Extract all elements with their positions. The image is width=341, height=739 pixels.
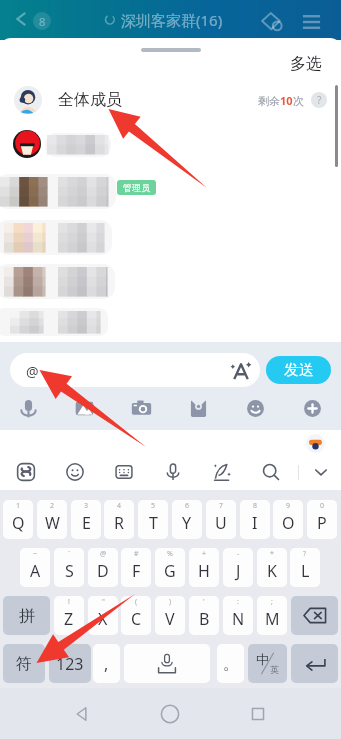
button[interactable]: Sogou — [1, 455, 50, 489]
button[interactable]: + — [189, 548, 219, 587]
staticText: 3 — [84, 501, 89, 511]
button[interactable]: AI text — [229, 358, 253, 382]
staticText: 。 — [223, 654, 239, 674]
staticText: @ — [26, 362, 39, 381]
button[interactable]: Handwrite — [197, 455, 246, 489]
staticText: , — [104, 653, 109, 675]
button[interactable]: More — [284, 391, 341, 425]
button[interactable]: 2 — [37, 500, 67, 539]
button[interactable]: Emoji — [50, 455, 99, 489]
button[interactable]: 5 — [138, 500, 168, 539]
staticText: 0 — [320, 501, 325, 511]
staticText: U — [215, 512, 227, 534]
button[interactable] — [0, 210, 341, 254]
staticText: 9 — [286, 501, 291, 511]
button[interactable]: 符 — [3, 644, 45, 683]
button[interactable]: 3 — [71, 500, 101, 539]
button[interactable]: 0 — [307, 500, 337, 539]
button[interactable]: Enter — [291, 644, 338, 683]
staticText: G — [164, 560, 176, 582]
button[interactable]: : — [223, 596, 253, 635]
button[interactable]: ` — [54, 548, 84, 587]
staticText: 123 — [56, 653, 84, 675]
staticText: ` — [68, 549, 70, 559]
staticText: ? — [303, 549, 307, 559]
staticText: 5 — [151, 501, 156, 511]
staticText: V — [165, 608, 175, 630]
staticText: W — [45, 512, 60, 534]
button[interactable]: ( — [121, 596, 151, 635]
button[interactable] — [0, 298, 341, 342]
staticText: 拼 — [19, 606, 35, 626]
staticText: 符 — [16, 654, 32, 674]
button[interactable]: # — [121, 548, 151, 587]
button[interactable]: Search — [246, 455, 295, 489]
button[interactable]: Home — [158, 702, 182, 726]
staticText: Z — [64, 608, 74, 630]
button[interactable]: Hide keyboard — [299, 455, 341, 489]
button[interactable]: 1 — [3, 500, 33, 539]
button[interactable]: Red packet — [170, 391, 227, 425]
button[interactable]: 拼 — [3, 596, 50, 635]
staticText: 次 — [293, 94, 304, 108]
button[interactable]: 6 — [172, 500, 202, 539]
button[interactable]: 。 — [217, 644, 244, 683]
staticText: B — [199, 608, 210, 630]
staticText: X — [98, 608, 108, 630]
button[interactable]: % — [155, 548, 185, 587]
button[interactable]: ' — [189, 596, 219, 635]
button[interactable]: " — [88, 596, 118, 635]
button[interactable]: Recents — [246, 702, 270, 726]
button[interactable]: ? — [290, 548, 320, 587]
staticText: % — [167, 549, 173, 559]
staticText: C — [131, 608, 142, 630]
button[interactable]: * — [257, 548, 287, 587]
button[interactable]: ) — [155, 596, 185, 635]
staticText: 4 — [117, 501, 122, 511]
button[interactable]: Unread 8 — [33, 12, 51, 30]
button[interactable]: ~ — [20, 548, 50, 587]
button[interactable]: 管理员 — [0, 166, 341, 210]
button[interactable]: Notes — [259, 10, 285, 34]
staticText: F — [132, 560, 141, 582]
button[interactable]: @ — [10, 353, 260, 387]
button[interactable]: Back — [11, 9, 31, 29]
button[interactable]: Space — [124, 644, 210, 683]
button[interactable]: 中 — [248, 644, 287, 683]
button[interactable]: - — [223, 548, 253, 587]
staticText: - — [237, 549, 240, 559]
button[interactable] — [0, 254, 341, 298]
button[interactable]: Back — [70, 702, 94, 726]
staticText: ~ — [33, 549, 38, 559]
button[interactable]: 123 — [49, 644, 91, 683]
staticText: Q — [12, 512, 25, 534]
button[interactable]: Backspace — [291, 596, 338, 635]
button[interactable]: Camera — [113, 391, 170, 425]
staticText: 8 — [39, 14, 46, 29]
button[interactable]: Account — [306, 434, 325, 453]
button[interactable]: Menu — [298, 10, 324, 34]
button[interactable]: Keyboard — [99, 455, 148, 489]
button[interactable]: 多选 — [281, 51, 331, 77]
staticText: 1 — [16, 501, 21, 511]
button[interactable]: 发送 — [266, 356, 331, 384]
button[interactable]: 8 — [240, 500, 270, 539]
button[interactable]: ; — [257, 596, 287, 635]
button[interactable]: Voice — [148, 455, 197, 489]
button[interactable]: 全体成员 — [0, 78, 341, 122]
staticText: : — [237, 597, 239, 607]
button[interactable]: Photo — [56, 391, 113, 425]
button[interactable]: , — [93, 644, 120, 683]
button[interactable]: ! — [54, 596, 84, 635]
staticText: A — [30, 560, 41, 582]
button[interactable]: @ — [88, 548, 118, 587]
staticText: 深圳客家群(16) — [121, 10, 223, 30]
button[interactable]: Voice — [0, 391, 56, 425]
button[interactable]: 9 — [273, 500, 303, 539]
button[interactable]: Emoji — [227, 391, 284, 425]
staticText: I — [252, 512, 258, 534]
button[interactable]: Help — [311, 92, 327, 108]
button[interactable]: 4 — [104, 500, 134, 539]
button[interactable]: 7 — [206, 500, 236, 539]
button[interactable] — [0, 122, 341, 166]
